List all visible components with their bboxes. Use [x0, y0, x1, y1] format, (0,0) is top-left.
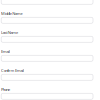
- button[interactable]: [1, 55, 93, 61]
- button[interactable]: [1, 93, 93, 99]
- staticText: Phone: [1, 87, 10, 92]
- staticText: Middle Name: [1, 11, 22, 16]
- staticText: Confirm Email: [1, 68, 24, 73]
- button[interactable]: [1, 74, 93, 80]
- staticText: Last Name: [1, 30, 18, 35]
- button[interactable]: [1, 36, 93, 42]
- staticText: Email: [1, 49, 10, 54]
- button[interactable]: [1, 17, 93, 23]
